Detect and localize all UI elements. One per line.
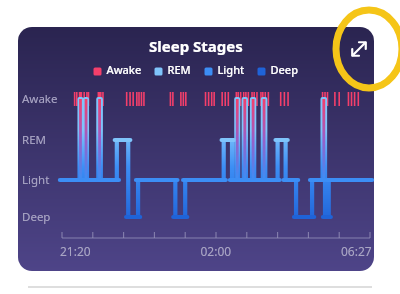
button[interactable] bbox=[18, 27, 374, 271]
button[interactable]: Expand chart bbox=[346, 36, 372, 62]
